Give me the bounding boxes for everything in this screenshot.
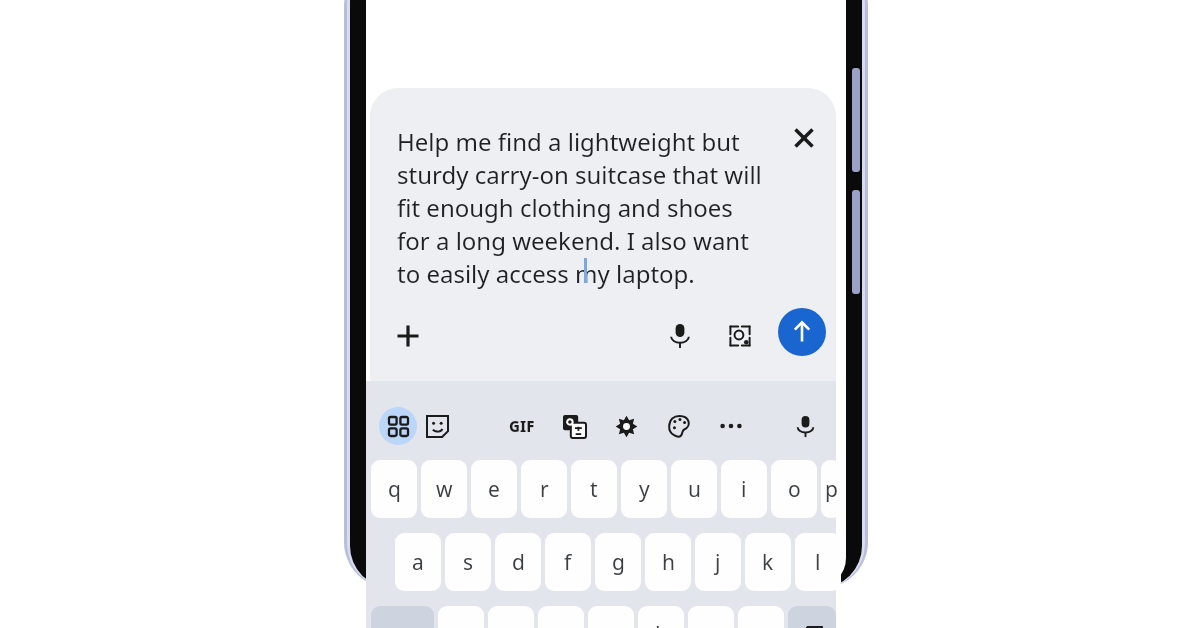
button[interactable]: f (545, 533, 591, 591)
staticText: q (388, 475, 401, 504)
button[interactable]: GIF (503, 407, 541, 445)
button[interactable]: z (438, 606, 484, 628)
staticText: f (564, 548, 572, 577)
button[interactable]: l (795, 533, 841, 591)
staticText: u (688, 475, 701, 504)
staticText: GIF (509, 416, 535, 436)
button[interactable]: h (645, 533, 691, 591)
button[interactable]: Stickers (418, 407, 456, 445)
staticText: e (488, 475, 500, 504)
button[interactable]: r (521, 460, 567, 518)
button[interactable]: w (421, 460, 467, 518)
button[interactable]: Voice input (658, 314, 702, 358)
staticText: k (762, 548, 774, 577)
button[interactable]: Toolbox (379, 407, 417, 445)
button[interactable]: Backspace (788, 606, 836, 628)
button[interactable]: v (588, 606, 634, 628)
button[interactable]: x (488, 606, 534, 628)
button[interactable]: Translate (555, 407, 593, 445)
staticText: r (540, 475, 549, 504)
staticText: b (655, 620, 668, 628)
button[interactable]: i (721, 460, 767, 518)
staticText: g (612, 548, 625, 577)
staticText: w (436, 475, 453, 504)
button[interactable]: Help me find a lightweight but sturdy ca… (370, 88, 836, 381)
button[interactable]: d (495, 533, 541, 591)
button[interactable]: t (571, 460, 617, 518)
button[interactable]: Add (386, 314, 430, 358)
staticText: j (715, 548, 721, 577)
button[interactable]: j (695, 533, 741, 591)
button[interactable]: s (445, 533, 491, 591)
button[interactable]: Send (778, 308, 826, 356)
staticText: y (639, 475, 650, 504)
staticText: h (662, 548, 675, 577)
button[interactable]: u (671, 460, 717, 518)
button[interactable]: q (371, 460, 417, 518)
button[interactable]: e (471, 460, 517, 518)
button[interactable]: o (771, 460, 817, 518)
staticText: Help me find a lightweight but sturdy ca… (397, 125, 769, 290)
button[interactable]: k (745, 533, 791, 591)
staticText: a (412, 548, 424, 577)
button[interactable]: Shift (371, 606, 434, 628)
button[interactable]: Google Lens (718, 314, 762, 358)
staticText: o (788, 475, 801, 504)
button[interactable]: g (595, 533, 641, 591)
button[interactable]: p (821, 460, 841, 518)
staticText: l (815, 548, 821, 577)
button[interactable]: n (688, 606, 734, 628)
button[interactable]: Theme (660, 407, 698, 445)
staticText: i (741, 475, 747, 504)
staticText: t (590, 475, 598, 504)
button[interactable]: b (638, 606, 684, 628)
button[interactable]: Close (782, 116, 826, 160)
staticText: p (825, 475, 838, 504)
button[interactable]: m (738, 606, 784, 628)
button[interactable]: Voice typing (786, 407, 824, 445)
button[interactable]: y (621, 460, 667, 518)
staticText: d (512, 548, 525, 577)
button[interactable]: c (538, 606, 584, 628)
button[interactable]: Settings (607, 407, 645, 445)
button[interactable]: a (395, 533, 441, 591)
staticText: s (463, 548, 474, 577)
button[interactable]: More options (712, 407, 750, 445)
